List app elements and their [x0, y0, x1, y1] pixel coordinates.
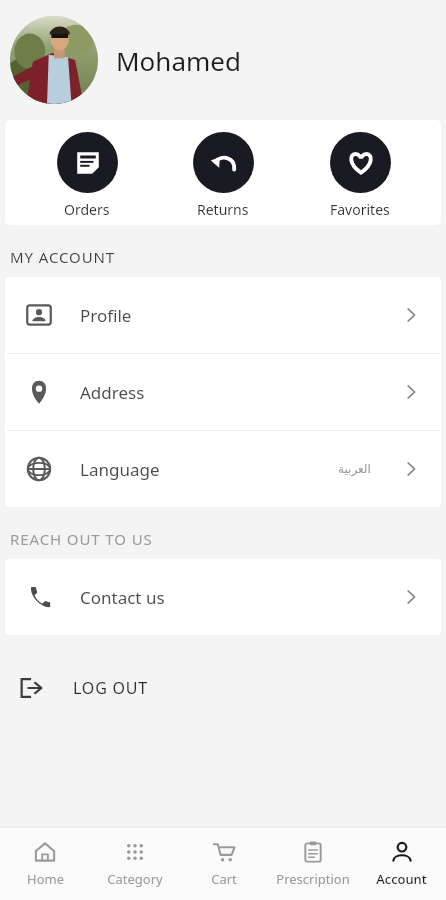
button[interactable]: Contact us: [5, 559, 441, 635]
button[interactable]: Account: [357, 827, 446, 900]
staticText: Orders: [64, 200, 110, 219]
button[interactable]: Favorites: [305, 132, 415, 219]
staticText: Returns: [197, 200, 249, 219]
staticText: Mohamed: [116, 43, 241, 78]
staticText: LOG OUT: [73, 677, 149, 699]
staticText: Profile: [80, 304, 132, 327]
staticText: Cart: [211, 870, 237, 888]
button[interactable]: Address: [5, 354, 441, 430]
staticText: Address: [80, 381, 145, 404]
button[interactable]: Cart: [179, 827, 268, 900]
staticText: MY ACCOUNT: [10, 247, 116, 267]
button[interactable]: Category: [90, 827, 179, 900]
staticText: Language: [80, 458, 160, 481]
button[interactable]: Orders: [32, 132, 142, 219]
button[interactable]: LOG OUT: [0, 657, 446, 719]
button[interactable]: Home: [0, 827, 90, 900]
staticText: Category: [107, 870, 163, 888]
staticText: Account: [376, 870, 427, 888]
staticText: Contact us: [80, 586, 165, 609]
staticText: العربية: [338, 462, 371, 476]
staticText: Favorites: [330, 200, 390, 219]
staticText: Home: [27, 870, 64, 888]
button[interactable]: Returns: [168, 132, 278, 219]
staticText: REACH OUT TO US: [10, 529, 153, 549]
button[interactable]: Profile: [5, 277, 441, 353]
staticText: Prescription: [276, 870, 350, 888]
button[interactable]: Prescription: [268, 827, 357, 900]
button[interactable]: Language: [5, 431, 441, 507]
button[interactable]: Mohamed: [0, 0, 446, 120]
